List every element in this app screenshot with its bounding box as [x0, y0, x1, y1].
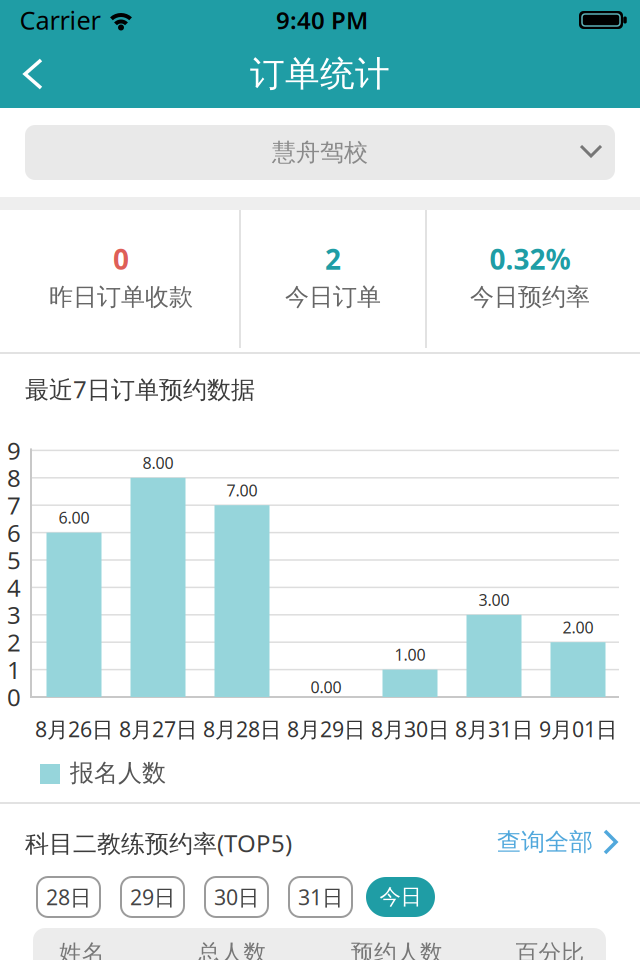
staticText: 预约人数 — [351, 939, 443, 960]
staticText: 0.32% — [489, 240, 570, 278]
staticText: 百分比 — [515, 939, 584, 960]
staticText: 28日 — [46, 883, 91, 911]
staticText: 8月31日 — [455, 715, 533, 743]
staticText: 5 — [7, 544, 21, 576]
staticText: 3 — [7, 599, 21, 631]
button[interactable]: 31日 — [289, 877, 352, 917]
staticText: 8.00 — [142, 452, 173, 473]
staticText: 31日 — [298, 883, 343, 911]
staticText: 8月28日 — [203, 715, 281, 743]
staticText: 8月30日 — [371, 715, 449, 743]
staticText: 2 — [7, 626, 21, 658]
staticText: 报名人数 — [70, 758, 166, 788]
staticText: 8月27日 — [119, 715, 197, 743]
staticText: 29日 — [130, 883, 175, 911]
staticText: 今日预约率 — [470, 282, 590, 312]
staticText: 4 — [7, 571, 21, 603]
staticText: 今日订单 — [285, 282, 381, 312]
button[interactable]: 今日 — [366, 877, 435, 917]
staticText: 总人数 — [197, 939, 266, 960]
staticText: 9 — [7, 434, 21, 466]
button[interactable]: 29日 — [121, 877, 184, 917]
staticText: 9:40 PM — [276, 4, 368, 36]
button[interactable]: 28日 — [37, 877, 100, 917]
staticText: 3.00 — [478, 589, 509, 610]
button[interactable]: 查询全部 — [497, 827, 619, 857]
staticText: 2 — [325, 240, 341, 278]
staticText: 昨日订单收款 — [49, 282, 193, 312]
staticText: 慧舟驾校 — [272, 138, 368, 167]
staticText: 30日 — [214, 883, 259, 911]
staticText: 9月01日 — [539, 715, 617, 743]
staticText: 7.00 — [226, 480, 257, 501]
button[interactable]: 选择驾校 — [25, 125, 615, 180]
staticText: 1 — [7, 654, 21, 686]
button[interactable]: 30日 — [205, 877, 268, 917]
staticText: 订单统计 — [250, 53, 390, 95]
staticText: 8月29日 — [287, 715, 365, 743]
staticText: 查询全部 — [497, 827, 593, 857]
staticText: 最近7日订单预约数据 — [25, 373, 255, 405]
staticText: 6.00 — [58, 507, 89, 528]
staticText: 7 — [7, 489, 21, 521]
staticText: 2.00 — [562, 617, 593, 638]
staticText: 6 — [7, 517, 21, 549]
staticText: 科目二教练预约率(TOP5) — [25, 827, 292, 859]
staticText: 1.00 — [394, 644, 425, 665]
staticText: 姓名 — [59, 939, 105, 960]
staticText: 8 — [7, 462, 21, 494]
staticText: 0 — [113, 240, 129, 278]
staticText: 8月26日 — [35, 715, 113, 743]
staticText: Carrier — [19, 3, 100, 37]
staticText: 0 — [7, 681, 21, 713]
button[interactable]: Back — [10, 51, 66, 97]
staticText: 今日 — [379, 884, 421, 910]
staticText: 0.00 — [310, 676, 341, 698]
